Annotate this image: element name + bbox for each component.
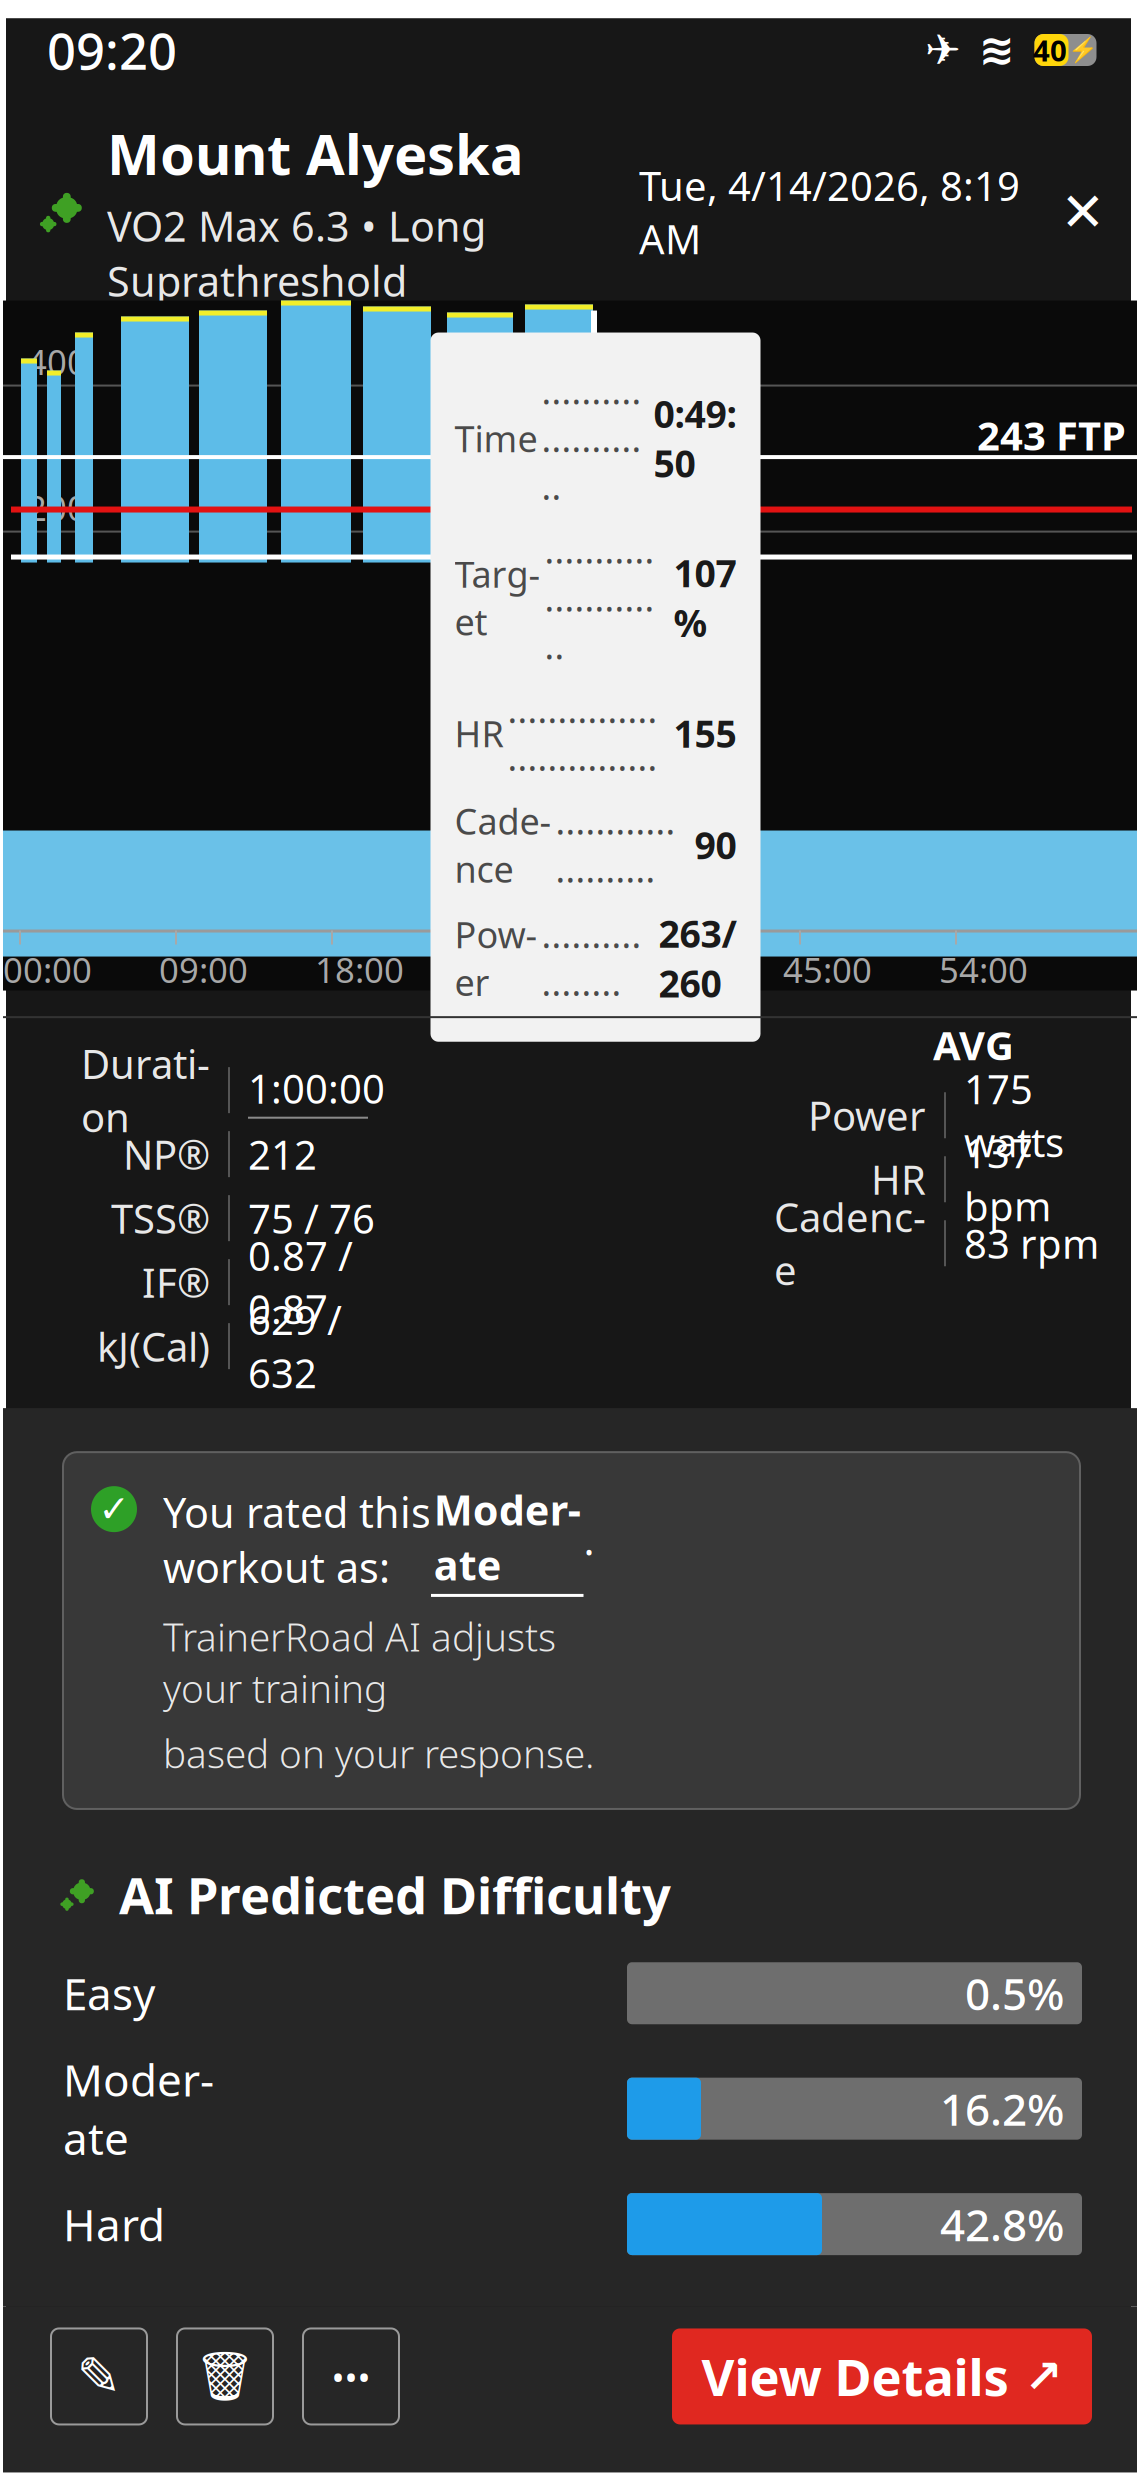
staticText: Power	[454, 910, 537, 1006]
staticText: Duration	[81, 1037, 210, 1143]
staticText: Tue, 4/14/2026, 8:19 AM	[639, 159, 1020, 265]
staticText: 175 watts	[964, 1062, 1064, 1168]
staticText: IF®	[142, 1256, 210, 1309]
staticText: 155	[673, 708, 736, 758]
staticText: 629 / 632	[248, 1293, 342, 1399]
staticText: 400	[27, 338, 87, 384]
staticText: 75 / 76	[248, 1192, 375, 1245]
staticText: 36:00	[627, 946, 716, 992]
staticText: Hard	[63, 2195, 165, 2253]
button[interactable]: Close	[1048, 177, 1118, 247]
staticText: ≋	[979, 26, 1015, 74]
staticText: 263/260	[658, 909, 736, 1008]
staticText: based on your response.	[163, 1728, 594, 1779]
staticText: 09:20	[47, 16, 177, 84]
staticText: ✎	[76, 2346, 121, 2407]
staticText: 0.87 / 0.87	[248, 1229, 353, 1335]
staticText: kJ(Cal)	[97, 1320, 210, 1373]
staticText: HR	[454, 709, 503, 757]
staticText: NP®	[123, 1128, 210, 1181]
staticText: TSS®	[111, 1192, 210, 1245]
staticText: 107%	[673, 548, 736, 647]
staticText: ......................	[541, 366, 641, 510]
staticText: ..............................	[507, 685, 657, 781]
staticText: 90	[694, 820, 736, 870]
staticText: VO2 Max 6.3 • Long Suprathreshold	[107, 198, 486, 308]
staticText: 0:49:50	[653, 389, 736, 488]
staticText: Time	[454, 414, 537, 462]
staticText: Easy	[63, 1964, 155, 2022]
staticText: ......................	[555, 797, 675, 893]
staticText: View Details	[701, 2343, 1008, 2410]
staticText: Power	[808, 1089, 926, 1142]
staticText: 00:00	[3, 946, 92, 992]
staticText: ........................	[544, 526, 654, 669]
staticText: ✈	[925, 26, 961, 74]
staticText: TrainerRoad AI adjusts your training	[163, 1611, 556, 1714]
staticText: AI Predicted Difficulty	[119, 1861, 671, 1928]
staticText: 🗑	[194, 2349, 255, 2404]
staticText: ✕	[1060, 182, 1105, 242]
staticText: 09:00	[159, 946, 248, 992]
staticText: You rated this workout as:	[163, 1485, 431, 1594]
staticText: Moderate	[63, 2050, 214, 2167]
staticText: ↗	[1024, 2351, 1062, 2402]
staticText: Cadence	[774, 1190, 926, 1296]
staticText: ⚡	[1068, 36, 1098, 64]
staticText: 83 rpm	[964, 1217, 1099, 1270]
staticText: HR	[871, 1153, 926, 1206]
staticText: 200	[27, 485, 87, 531]
staticText: 243 FTP	[977, 408, 1126, 462]
staticText: Cadence	[454, 797, 551, 893]
staticText: 54:00	[939, 946, 1028, 992]
staticText: ✓	[98, 1488, 129, 1530]
staticText: .	[583, 1512, 594, 1567]
staticText: 212	[248, 1128, 317, 1181]
button[interactable]: Edit	[51, 2328, 147, 2424]
staticText: 27:00	[471, 946, 560, 992]
button[interactable]: More	[303, 2328, 399, 2424]
staticText: Mount Alyeska	[107, 116, 524, 190]
button[interactable]: Delete	[177, 2328, 273, 2424]
staticText: 0.5%	[965, 1964, 1064, 2022]
staticText: 18:00	[315, 946, 404, 992]
staticText: 45:00	[783, 946, 872, 992]
button[interactable]: View Details	[672, 2328, 1092, 2424]
staticText: Target	[454, 550, 540, 645]
staticText: 42.8%	[940, 2195, 1064, 2253]
staticText: 1:00:00	[248, 1062, 385, 1115]
staticText: ..................	[541, 910, 641, 1006]
staticText: •••	[331, 2353, 370, 2399]
staticText: 16.2%	[940, 2079, 1064, 2138]
staticText: 137 bpm	[964, 1126, 1051, 1232]
staticText: Moderate	[434, 1482, 581, 1592]
staticText: 40	[1033, 30, 1067, 69]
staticText: AVG	[933, 1018, 1014, 1071]
